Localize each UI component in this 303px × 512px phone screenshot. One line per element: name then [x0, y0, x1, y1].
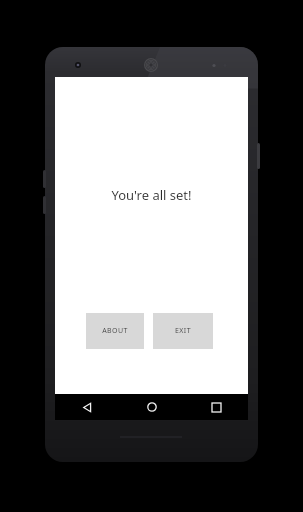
button[interactable]: Recent apps	[184, 394, 248, 420]
button[interactable]: ABOUT	[86, 313, 144, 349]
staticText: You're all set!	[111, 186, 192, 204]
staticText: ABOUT	[102, 326, 128, 336]
button[interactable]: EXIT	[153, 313, 213, 349]
staticText: EXIT	[175, 326, 191, 336]
button[interactable]: Back	[55, 394, 120, 420]
button[interactable]: Home	[120, 394, 184, 420]
